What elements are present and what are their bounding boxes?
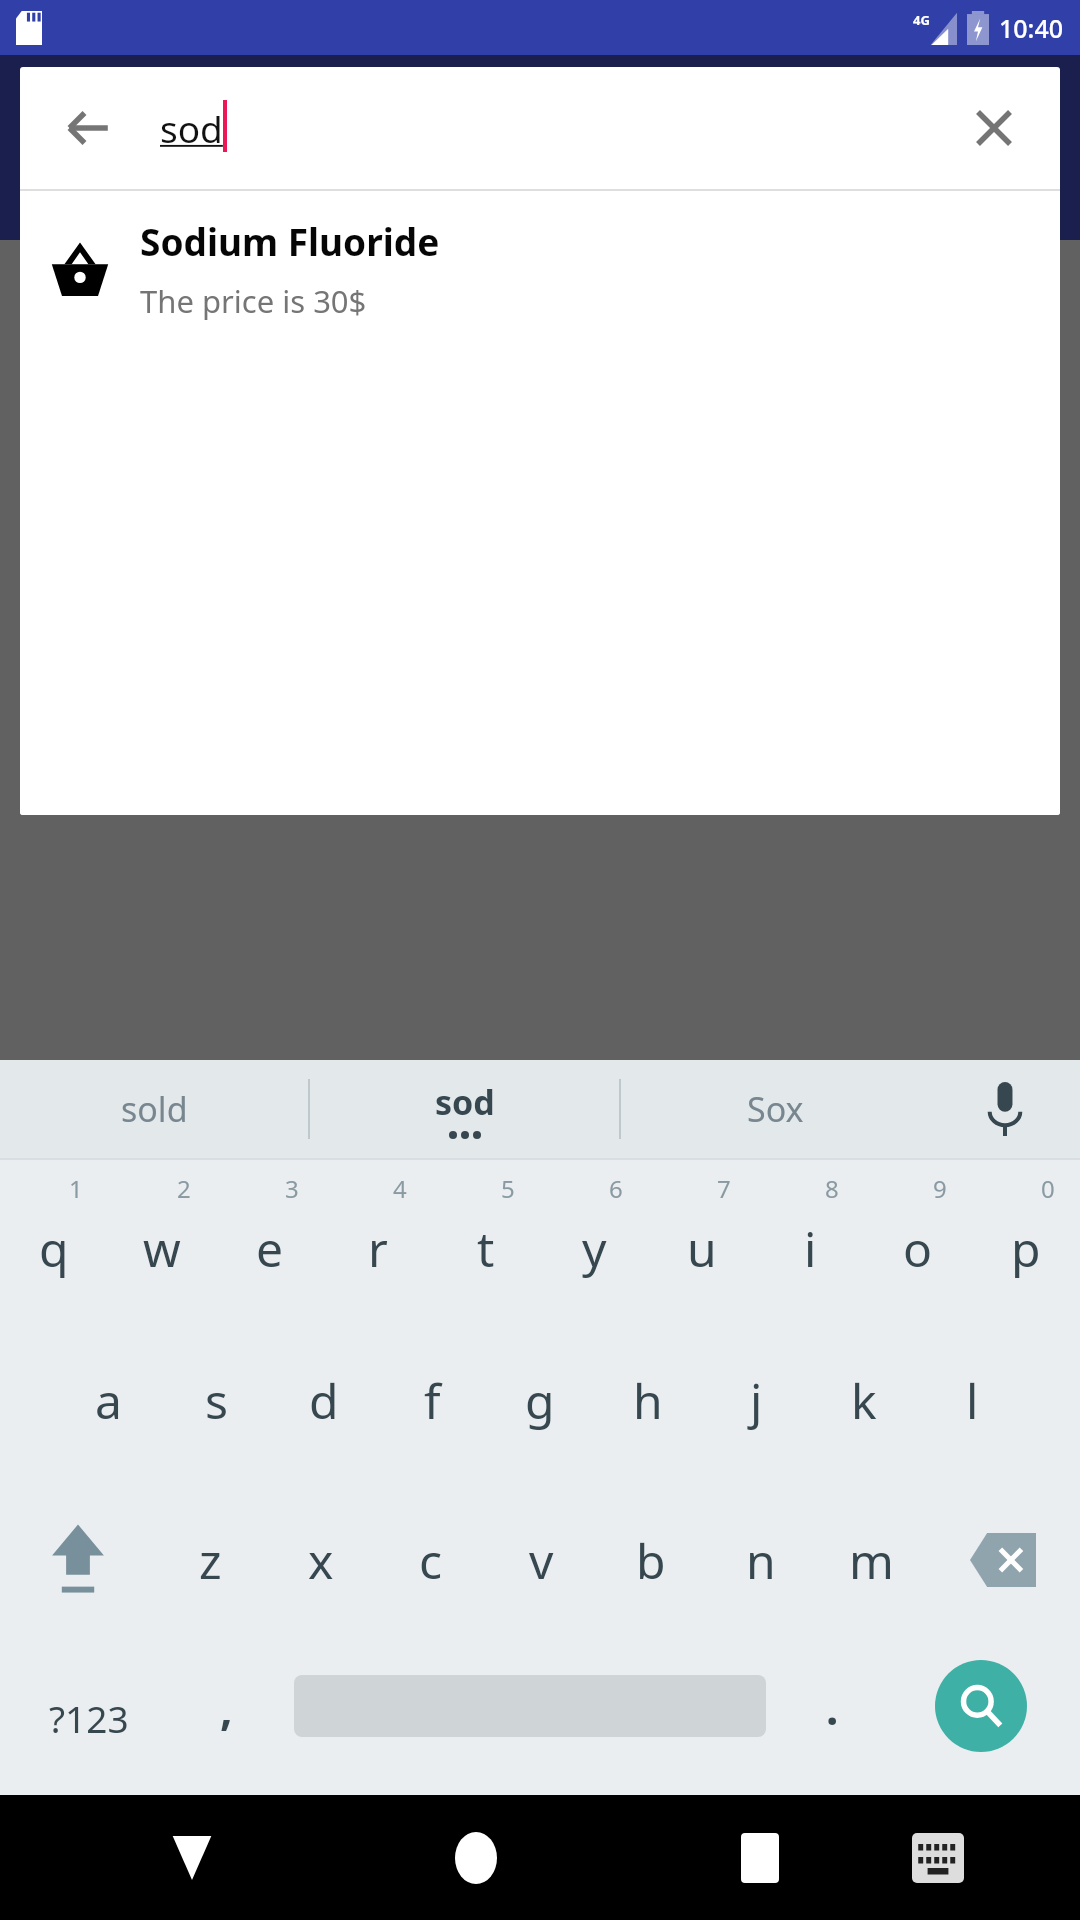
button[interactable]: Switch keyboard: [867, 1795, 1009, 1920]
staticText: f: [424, 1368, 441, 1433]
staticText: 3: [285, 1172, 299, 1205]
button[interactable]: Home: [405, 1795, 547, 1920]
staticText: Sox: [747, 1086, 804, 1132]
button[interactable]: c: [376, 1480, 486, 1640]
staticText: 1: [69, 1172, 83, 1205]
staticText: e: [256, 1216, 284, 1281]
button[interactable]: Back: [120, 1795, 263, 1920]
staticText: 10:40: [999, 11, 1064, 45]
button[interactable]: v: [486, 1480, 596, 1640]
button[interactable]: k: [810, 1320, 918, 1480]
staticText: k: [851, 1368, 877, 1433]
staticText: q: [39, 1216, 69, 1281]
staticText: n: [746, 1528, 776, 1593]
button[interactable]: Voice input: [930, 1060, 1080, 1158]
staticText: a: [95, 1368, 122, 1433]
button[interactable]: s: [162, 1320, 270, 1480]
staticText: v: [529, 1528, 554, 1593]
button[interactable]: Shift: [0, 1480, 155, 1640]
button[interactable]: a: [54, 1320, 162, 1480]
staticText: sod: [160, 103, 223, 153]
button[interactable]: j: [702, 1320, 810, 1480]
button[interactable]: d: [270, 1320, 378, 1480]
staticText: The price is 30$: [140, 280, 367, 322]
staticText: Sodium Fluoride: [140, 216, 440, 266]
staticText: g: [525, 1368, 555, 1433]
staticText: .: [826, 1678, 839, 1738]
button[interactable]: .: [783, 1640, 882, 1795]
staticText: b: [636, 1528, 666, 1593]
staticText: l: [966, 1368, 979, 1433]
button[interactable]: sod: [310, 1060, 619, 1158]
staticText: t: [477, 1216, 495, 1281]
button[interactable]: Clear query: [956, 90, 1032, 166]
staticText: 6: [609, 1172, 623, 1205]
button[interactable]: 1: [0, 1160, 108, 1320]
staticText: x: [308, 1528, 334, 1593]
staticText: ?123: [49, 1693, 129, 1743]
staticText: 4: [393, 1172, 407, 1205]
staticText: p: [1011, 1216, 1041, 1281]
staticText: 7: [717, 1172, 731, 1205]
button[interactable]: g: [486, 1320, 594, 1480]
button[interactable]: Back: [50, 90, 126, 166]
button[interactable]: h: [594, 1320, 702, 1480]
staticText: r: [368, 1216, 388, 1281]
button[interactable]: m: [816, 1480, 926, 1640]
button[interactable]: ?123: [0, 1640, 177, 1795]
button[interactable]: Recent apps: [689, 1795, 831, 1920]
staticText: m: [849, 1528, 894, 1593]
staticText: ,: [220, 1678, 233, 1738]
staticText: z: [199, 1528, 222, 1593]
button[interactable]: Sodium Fluoride: [20, 191, 1060, 346]
button[interactable]: b: [596, 1480, 706, 1640]
button[interactable]: 5: [432, 1160, 540, 1320]
staticText: o: [903, 1216, 933, 1281]
button[interactable]: x: [266, 1480, 376, 1640]
staticText: w: [143, 1216, 181, 1281]
staticText: i: [804, 1216, 817, 1281]
staticText: sod: [435, 1079, 495, 1125]
staticText: 5: [501, 1172, 515, 1205]
button[interactable]: 0: [972, 1160, 1080, 1320]
button[interactable]: Sox: [621, 1060, 930, 1158]
staticText: d: [309, 1368, 339, 1433]
button[interactable]: f: [378, 1320, 486, 1480]
button[interactable]: Search: [882, 1640, 1080, 1795]
button[interactable]: 6: [540, 1160, 648, 1320]
staticText: 0: [1041, 1172, 1055, 1205]
button[interactable]: 4: [324, 1160, 432, 1320]
button[interactable]: 7: [648, 1160, 756, 1320]
staticText: y: [582, 1216, 607, 1281]
staticText: 4G: [913, 11, 930, 29]
button[interactable]: z: [155, 1480, 266, 1640]
button[interactable]: sold: [0, 1060, 308, 1158]
button[interactable]: 8: [756, 1160, 864, 1320]
button[interactable]: 3: [216, 1160, 324, 1320]
staticText: j: [750, 1368, 763, 1433]
button[interactable]: 2: [108, 1160, 216, 1320]
button[interactable]: 9: [864, 1160, 972, 1320]
button[interactable]: [276, 1640, 783, 1795]
staticText: 8: [825, 1172, 839, 1205]
button[interactable]: l: [918, 1320, 1026, 1480]
staticText: c: [419, 1528, 443, 1593]
staticText: sold: [121, 1086, 188, 1132]
button[interactable]: Backspace: [926, 1480, 1080, 1640]
staticText: s: [205, 1368, 228, 1433]
staticText: 2: [177, 1172, 191, 1205]
staticText: 9: [933, 1172, 947, 1205]
staticText: u: [687, 1216, 717, 1281]
button[interactable]: ,: [177, 1640, 276, 1795]
staticText: h: [633, 1368, 663, 1433]
button[interactable]: n: [706, 1480, 816, 1640]
